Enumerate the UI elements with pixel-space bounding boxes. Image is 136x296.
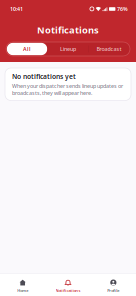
- staticText: Notifications: [37, 24, 99, 36]
- staticText: Lineup: [60, 45, 76, 53]
- staticText: 10:41: [10, 5, 23, 13]
- staticText: When your dispatcher sends lineup update…: [12, 82, 123, 97]
- button[interactable]: Notifications: [45, 273, 91, 296]
- button[interactable]: Broadcast: [89, 43, 129, 55]
- staticText: Notifications: [55, 288, 80, 293]
- staticText: Profile: [107, 288, 119, 293]
- staticText: Broadcast: [96, 45, 121, 53]
- staticText: All: [23, 45, 31, 53]
- button[interactable]: Lineup: [48, 43, 88, 55]
- staticText: Home: [17, 288, 28, 293]
- button[interactable]: Home: [0, 273, 45, 296]
- button[interactable]: Profile: [91, 273, 136, 296]
- button[interactable]: All: [7, 43, 47, 55]
- staticText: 76%: [117, 5, 128, 13]
- staticText: No notifications yet: [12, 72, 76, 81]
